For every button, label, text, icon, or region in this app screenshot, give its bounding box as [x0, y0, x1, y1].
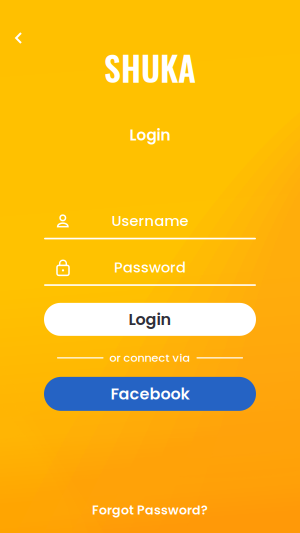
staticText: Facebook: [110, 383, 189, 405]
button[interactable]: Login: [44, 303, 256, 336]
staticText: Password: [114, 257, 186, 278]
button[interactable]: Back: [0, 0, 36, 58]
staticText: SHUKA: [104, 43, 196, 92]
staticText: Login: [129, 124, 170, 146]
staticText: Login: [128, 308, 171, 331]
staticText: or connect via: [109, 350, 190, 366]
button[interactable]: Facebook: [44, 377, 256, 411]
button[interactable]: Forgot Password?: [78, 493, 222, 527]
staticText: Username: [111, 211, 188, 231]
staticText: Forgot Password?: [92, 501, 208, 519]
